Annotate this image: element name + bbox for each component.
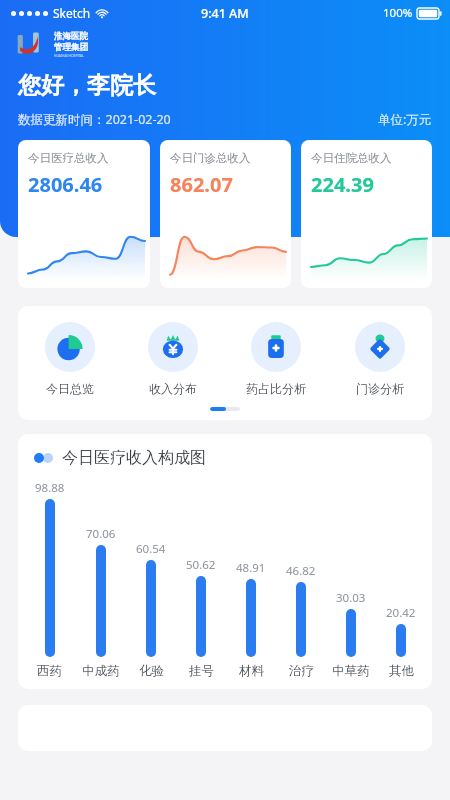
button[interactable]: 收入分布 — [121, 322, 224, 396]
staticText: 管理集团 — [54, 42, 88, 53]
staticText: 收入分布 — [149, 381, 197, 396]
staticText: 48.91 — [236, 560, 266, 576]
button[interactable]: 20.42 — [376, 480, 426, 679]
staticText: 材料 — [239, 663, 264, 679]
staticText: 化验 — [139, 663, 164, 679]
staticText: 今日医疗总收入 — [28, 151, 109, 165]
staticText: 门诊分析 — [356, 381, 404, 396]
staticText: 862.07 — [170, 171, 233, 198]
staticText: 50.62 — [186, 557, 216, 573]
staticText: 今日医疗收入构成图 — [62, 448, 206, 468]
staticText: 今日总览 — [46, 381, 94, 396]
button[interactable]: 药占比分析 — [224, 322, 328, 396]
button[interactable]: 70.06 — [75, 480, 126, 679]
staticText: 其他 — [389, 663, 414, 679]
button[interactable]: 今日医疗收入构成图 — [34, 448, 206, 468]
staticText: 30.03 — [336, 590, 366, 606]
button[interactable]: 50.62 — [176, 480, 226, 679]
staticText: 2806.46 — [28, 171, 103, 198]
staticText: 70.06 — [86, 526, 116, 542]
button[interactable]: 30.03 — [326, 480, 376, 679]
staticText: 药占比分析 — [246, 381, 306, 396]
staticText: 98.88 — [35, 480, 65, 496]
staticText: 单位:万元 — [378, 111, 432, 128]
staticText: 100% — [383, 5, 413, 21]
staticText: 数据更新时间：2021-02-20 — [18, 111, 171, 128]
staticText: HUAIHAI HOSPITAL — [54, 53, 84, 57]
staticText: 今日住院总收入 — [311, 151, 392, 165]
button[interactable]: 门诊分析 — [328, 322, 432, 396]
staticText: 西药 — [37, 663, 62, 679]
staticText: 您好，李院长 — [18, 71, 156, 100]
button[interactable]: 48.91 — [226, 480, 276, 679]
staticText: 60.54 — [136, 541, 166, 557]
staticText: 224.39 — [311, 171, 374, 198]
staticText: 挂号 — [189, 663, 214, 679]
staticText: Sketch — [53, 5, 91, 21]
button[interactable]: 98.88 — [24, 480, 75, 679]
button[interactable]: 今日门诊总收入 — [160, 140, 291, 288]
staticText: 治疗 — [289, 663, 314, 679]
staticText: 9:41 AM — [201, 5, 249, 22]
staticText: 淮海医院 — [54, 31, 88, 42]
button[interactable]: 今日医疗总收入 — [18, 140, 150, 288]
staticText: 46.82 — [286, 563, 316, 579]
staticText: 今日门诊总收入 — [170, 151, 251, 165]
button[interactable]: 46.82 — [276, 480, 326, 679]
button[interactable]: 60.54 — [126, 480, 176, 679]
staticText: 中成药 — [82, 663, 120, 679]
button[interactable]: 今日住院总收入 — [301, 140, 432, 288]
staticText: 中草药 — [332, 663, 370, 679]
button[interactable]: 今日总览 — [18, 322, 121, 396]
staticText: 20.42 — [386, 605, 416, 621]
